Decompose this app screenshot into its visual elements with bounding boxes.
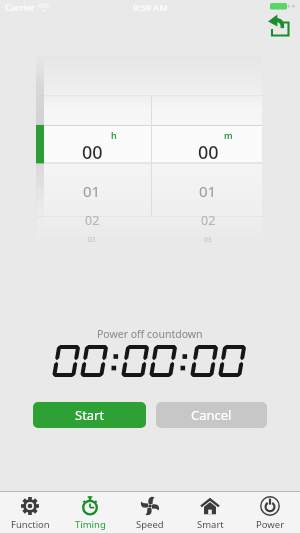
staticText: 03 [204,235,212,244]
staticText: 01 [83,181,101,201]
staticText: Timing [75,518,106,531]
staticText: Start [75,406,105,424]
staticText: 00 [82,140,103,160]
button[interactable]: Timing [60,492,120,533]
staticText: Function [11,518,50,531]
button[interactable]: Speed [120,492,180,533]
staticText: 02 [85,212,100,229]
button[interactable]: Cancel [156,402,267,428]
staticText: 03 [88,235,96,244]
staticText: Cancel [191,406,232,424]
staticText: Speed [136,518,164,531]
staticText: m [224,129,233,141]
button[interactable] [266,13,292,39]
staticText: h [111,129,117,141]
staticText: Carrier [5,1,35,13]
button[interactable]: Smart [180,492,240,533]
staticText: 02 [201,212,216,229]
staticText: Power [256,518,285,531]
staticText: 00 [198,140,219,160]
button[interactable]: Power [240,492,300,533]
button[interactable]: Start [33,402,146,428]
staticText: 9:59 AM [133,1,168,13]
staticText: 01 [199,181,217,201]
staticText: Power off countdown [97,327,203,341]
staticText: Smart [197,518,224,531]
button[interactable]: Function [0,492,60,533]
